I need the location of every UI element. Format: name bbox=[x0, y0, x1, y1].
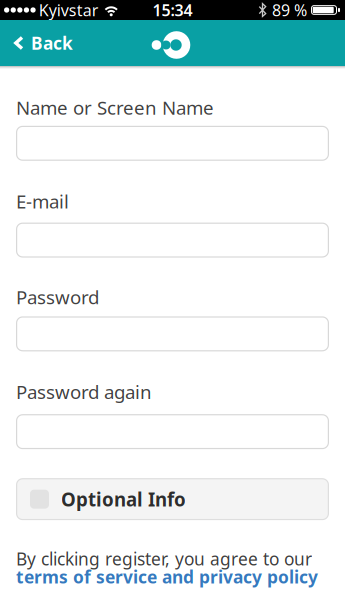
staticText: Back bbox=[31, 31, 73, 54]
staticText: 89 % bbox=[272, 0, 307, 21]
button[interactable] bbox=[16, 126, 329, 161]
staticText: E-mail bbox=[16, 189, 69, 214]
staticText: 15:34 bbox=[152, 0, 192, 21]
staticText: terms of service and privacy policy bbox=[16, 565, 318, 588]
staticText: Kyivstar bbox=[39, 0, 99, 21]
button[interactable] bbox=[16, 316, 329, 351]
staticText: Name or Screen Name bbox=[16, 95, 214, 120]
button[interactable]: Back bbox=[0, 31, 73, 54]
button[interactable] bbox=[16, 223, 329, 258]
staticText: Password bbox=[16, 285, 99, 309]
staticText: By clicking register, you agree to our bbox=[16, 547, 312, 570]
button[interactable]: Optional Info bbox=[16, 478, 329, 520]
staticText: Optional Info bbox=[61, 487, 186, 512]
button[interactable] bbox=[16, 414, 329, 449]
button[interactable]: terms of service and privacy policy bbox=[16, 565, 318, 588]
staticText: Password again bbox=[16, 379, 152, 404]
